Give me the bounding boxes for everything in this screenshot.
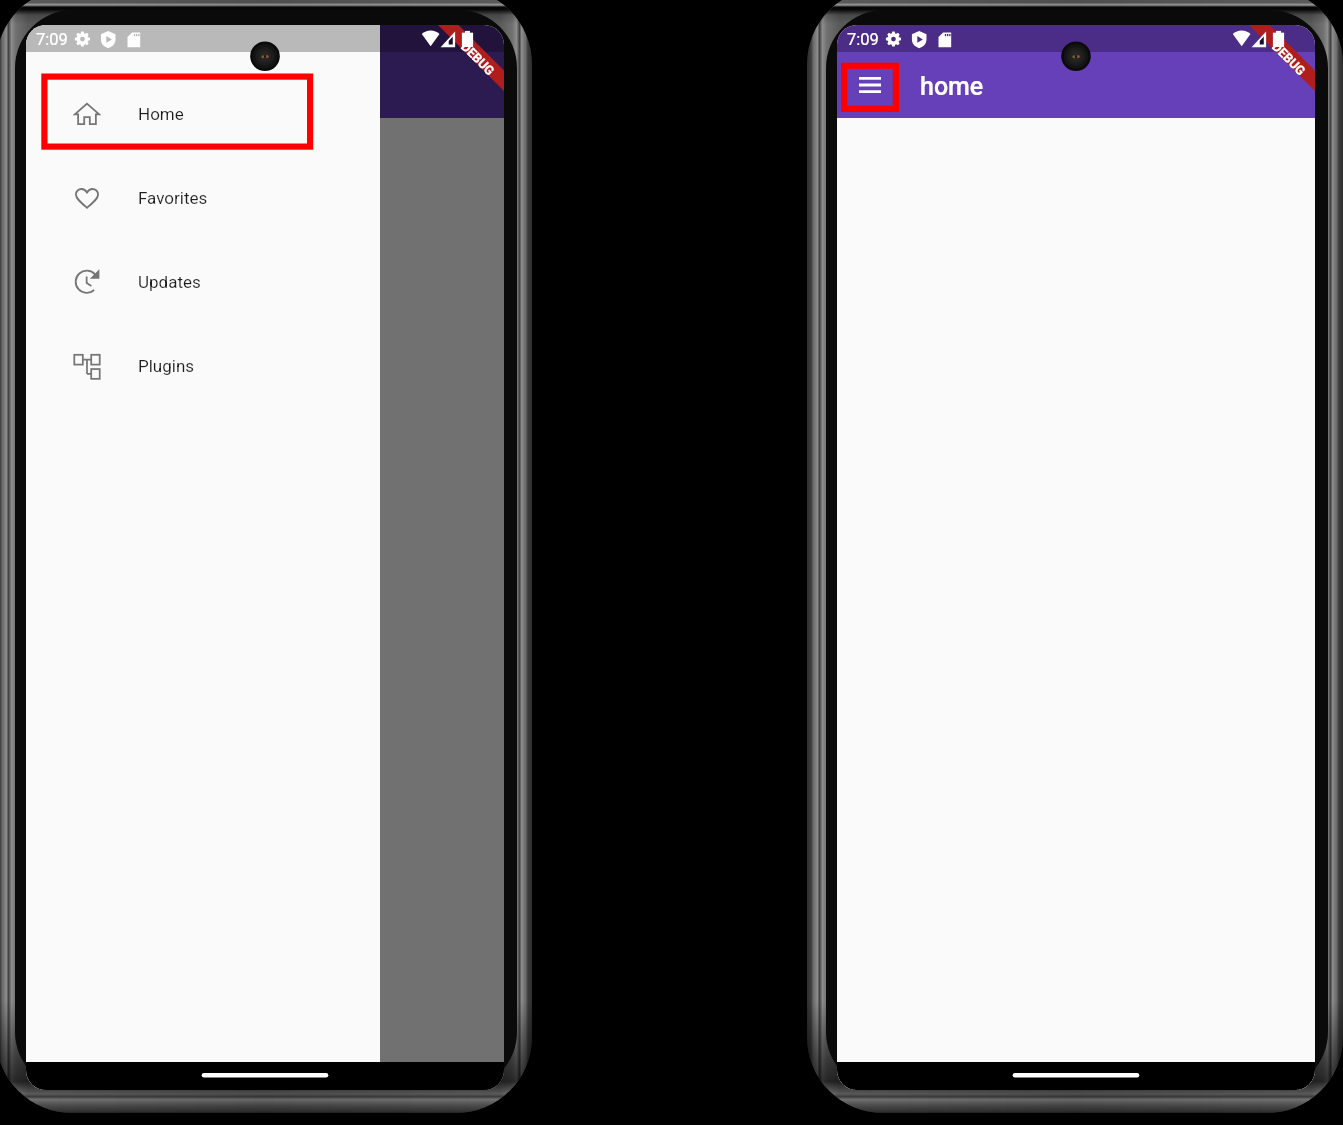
staticText: home [920,72,984,101]
button[interactable]: Open navigation menu [837,52,903,118]
staticText: DEBUG [1269,39,1309,78]
staticText: Plugins [138,356,195,376]
staticText: 7:09 [36,30,68,49]
staticText: Updates [138,272,201,292]
staticText: Favorites [138,188,208,208]
staticText: DEBUG [458,39,498,78]
button[interactable]: Favorites [26,156,380,240]
button[interactable]: Updates [26,240,380,324]
button[interactable]: Home [26,72,380,156]
button[interactable]: Plugins [26,324,380,408]
staticText: Home [138,104,184,124]
staticText: 7:09 [847,30,879,49]
